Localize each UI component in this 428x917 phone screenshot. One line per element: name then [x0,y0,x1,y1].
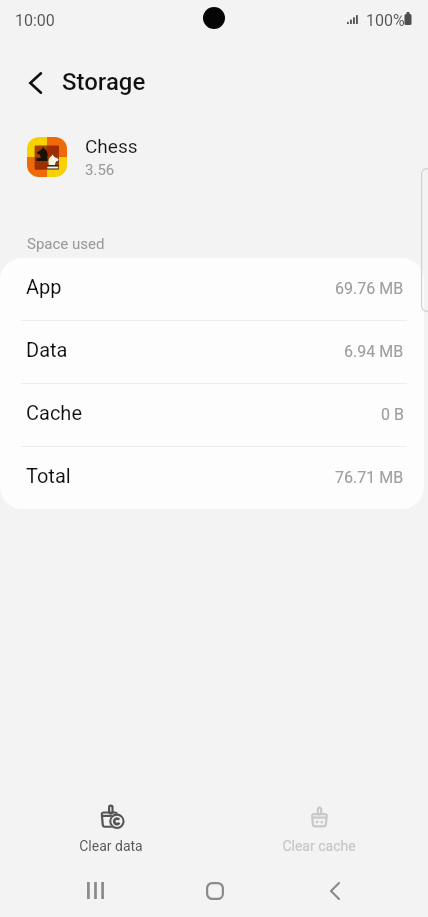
staticText: Clear data [79,838,143,854]
staticText: Total [26,464,71,487]
button[interactable]: Clear cache [215,796,423,858]
button[interactable]: Home [155,867,275,914]
button[interactable]: Cache [0,384,424,446]
staticText: 76.71 MB [335,468,404,487]
button[interactable]: Data [0,321,424,383]
staticText: 0 B [381,405,404,424]
staticText: Chess [85,135,138,157]
staticText: 6.94 MB [344,342,404,361]
staticText: Storage [62,68,146,96]
staticText: Clear cache [282,838,356,854]
button[interactable]: Total [0,447,424,509]
button[interactable]: Recent apps [36,867,155,914]
button[interactable]: Clear data [7,796,215,858]
staticText: Data [26,338,68,361]
staticText: App [26,275,62,298]
staticText: 3.56 [85,161,115,179]
staticText: 69.76 MB [335,279,404,298]
staticText: Space used [27,235,105,253]
button[interactable]: App [0,258,424,320]
staticText: Cache [26,401,82,424]
button[interactable]: Back [275,867,395,914]
staticText: 10:00 [15,11,55,30]
button[interactable]: Navigate up [9,57,61,109]
staticText: 100% [366,11,405,30]
